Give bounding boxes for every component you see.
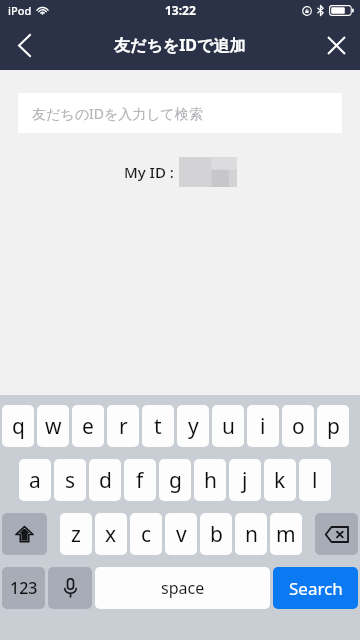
button[interactable]: Search	[273, 567, 358, 609]
staticText: f	[136, 466, 144, 495]
button[interactable]: Close	[312, 21, 360, 69]
button[interactable]: h	[194, 459, 226, 501]
staticText: l	[312, 466, 318, 495]
button[interactable]: f	[124, 459, 156, 501]
button[interactable]: Back	[0, 21, 48, 69]
button[interactable]: r	[107, 405, 139, 447]
button[interactable]: x	[95, 513, 127, 555]
button[interactable]: z	[60, 513, 92, 555]
button[interactable]: Backspace	[315, 513, 358, 555]
staticText: j	[242, 466, 248, 495]
button[interactable]: s	[54, 459, 86, 501]
button[interactable]: c	[130, 513, 162, 555]
button[interactable]: q	[2, 405, 34, 447]
staticText: w	[45, 412, 62, 441]
staticText: u	[222, 412, 235, 441]
button[interactable]: i	[247, 405, 279, 447]
button[interactable]: Voice input	[48, 567, 92, 609]
staticText: 友だちをIDで追加	[114, 34, 246, 56]
button[interactable]: 123	[2, 567, 45, 609]
staticText: z	[71, 520, 81, 549]
staticText: h	[204, 466, 217, 495]
button[interactable]: a	[19, 459, 51, 501]
button[interactable]: 友だちのIDを入力して検索	[18, 93, 342, 133]
staticText: 友だちのIDを入力して検索	[32, 104, 203, 123]
staticText: Search	[289, 577, 343, 600]
staticText: t	[154, 412, 162, 441]
button[interactable]: k	[264, 459, 296, 501]
staticText: q	[12, 412, 25, 441]
staticText: d	[99, 466, 112, 495]
staticText: i	[260, 412, 266, 441]
button[interactable]: space	[95, 567, 270, 609]
button[interactable]: p	[317, 405, 349, 447]
staticText: y	[188, 412, 199, 441]
button[interactable]: t	[142, 405, 174, 447]
staticText: 13:22	[165, 2, 196, 18]
staticText: m	[276, 520, 296, 549]
button[interactable]: d	[89, 459, 121, 501]
button[interactable]: b	[200, 513, 232, 555]
staticText: e	[82, 412, 94, 441]
button[interactable]: m	[270, 513, 302, 555]
button[interactable]: y	[177, 405, 209, 447]
staticText: 123	[10, 577, 38, 599]
staticText: g	[169, 466, 182, 495]
staticText: k	[274, 466, 286, 495]
button[interactable]: l	[299, 459, 331, 501]
button[interactable]: o	[282, 405, 314, 447]
staticText: My ID :	[124, 162, 174, 182]
button[interactable]: g	[159, 459, 191, 501]
staticText: p	[327, 412, 340, 441]
staticText: r	[119, 412, 128, 441]
button[interactable]: v	[165, 513, 197, 555]
staticText: a	[29, 466, 41, 495]
button[interactable]: Shift	[2, 513, 47, 555]
staticText: x	[105, 520, 117, 549]
staticText: s	[65, 466, 76, 495]
staticText: iPod	[8, 3, 32, 18]
staticText: c	[141, 520, 152, 549]
staticText: space	[161, 577, 205, 599]
staticText: n	[245, 520, 258, 549]
staticText: b	[210, 520, 223, 549]
staticText: o	[292, 412, 305, 441]
button[interactable]: e	[72, 405, 104, 447]
button[interactable]: n	[235, 513, 267, 555]
button[interactable]: w	[37, 405, 69, 447]
button[interactable]: u	[212, 405, 244, 447]
staticText: v	[176, 520, 187, 549]
button[interactable]: j	[229, 459, 261, 501]
